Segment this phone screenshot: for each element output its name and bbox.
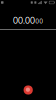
staticText: 00.00 [13, 15, 35, 26]
staticText: 00 [35, 18, 43, 25]
button[interactable]: Record [24, 85, 33, 95]
